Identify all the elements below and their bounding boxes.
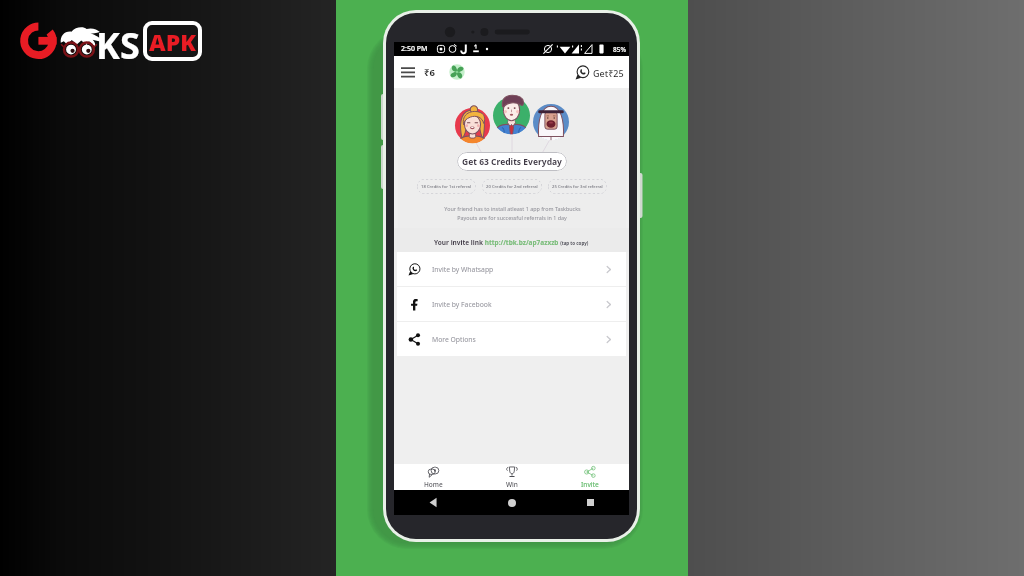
button[interactable]: More Options <box>397 322 626 356</box>
staticText: More Options <box>432 335 476 344</box>
staticText: 18 Credits for 1st referral <box>421 184 472 190</box>
staticText: Win <box>506 480 518 489</box>
button[interactable]: Open navigation menu <box>394 58 422 86</box>
button[interactable]: ₹6 <box>422 60 437 85</box>
staticText: 20 Credits for 2nd referral <box>486 184 538 190</box>
button[interactable]: Invite by Facebook <box>397 287 626 321</box>
button[interactable]: Invite <box>551 464 629 490</box>
button[interactable]: Back <box>394 490 473 515</box>
button[interactable]: Spin and win <box>449 64 465 80</box>
staticText: KS <box>96 21 140 70</box>
staticText: Invite by Facebook <box>432 300 492 309</box>
staticText: APK <box>149 26 197 57</box>
staticText: Your invite link http://tbk.bz/ap7azxzb … <box>434 238 589 247</box>
staticText: Invite by Whatsapp <box>432 265 494 274</box>
staticText: 2:50 PM <box>401 44 428 54</box>
button[interactable]: Win <box>473 464 551 490</box>
staticText: Invite <box>581 480 599 489</box>
staticText: ₹6 <box>424 66 435 79</box>
staticText: 85% <box>613 45 626 54</box>
button[interactable]: Get₹25 <box>567 60 629 85</box>
staticText: Your friend has to install atleast 1 app… <box>444 205 581 212</box>
staticText: Payouts are for successful referrals in … <box>457 214 567 221</box>
button[interactable]: Get 63 Credits Everyday <box>457 152 567 171</box>
staticText: Get 63 Credits Everyday <box>462 156 562 168</box>
button[interactable]: Home <box>473 490 551 515</box>
button[interactable]: Invite by Whatsapp <box>397 252 626 286</box>
button[interactable]: Recent apps <box>551 490 629 515</box>
staticText: Home <box>424 480 443 489</box>
staticText: 25 Credits for 3rd referral <box>552 184 603 190</box>
button[interactable]: Your invite link http://tbk.bz/ap7azxzb … <box>394 228 629 252</box>
staticText: Get₹25 <box>593 67 624 79</box>
button[interactable]: Home <box>394 464 473 490</box>
